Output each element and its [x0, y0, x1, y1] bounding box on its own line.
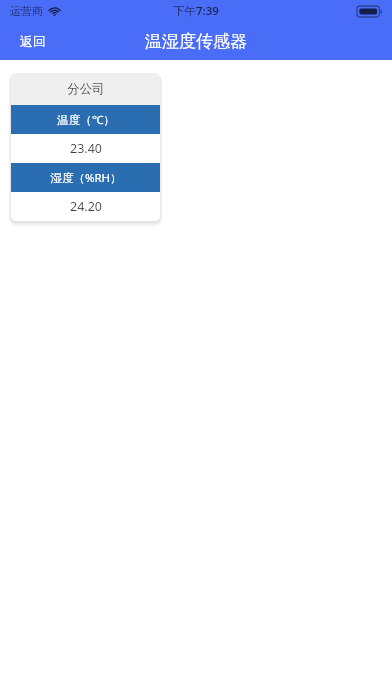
staticText: 分公司 [67, 81, 105, 97]
button[interactable]: 返回 [14, 29, 52, 53]
staticText: 返回 [20, 33, 46, 49]
staticText: 下午7:39 [173, 3, 219, 19]
staticText: 温度（℃） [57, 112, 115, 128]
staticText: 24.20 [70, 198, 102, 215]
button[interactable]: 24.20 [11, 192, 160, 221]
button[interactable]: 分公司 [11, 73, 160, 221]
staticText: 运营商 [10, 4, 43, 18]
button[interactable]: 湿度（%RH） [11, 163, 160, 192]
button[interactable]: 分公司 [11, 73, 160, 105]
button[interactable]: 23.40 [11, 134, 160, 163]
staticText: 湿度（%RH） [50, 170, 122, 186]
button[interactable]: 温度（℃） [11, 105, 160, 134]
staticText: 温湿度传感器 [145, 31, 247, 52]
staticText: 23.40 [70, 140, 102, 157]
